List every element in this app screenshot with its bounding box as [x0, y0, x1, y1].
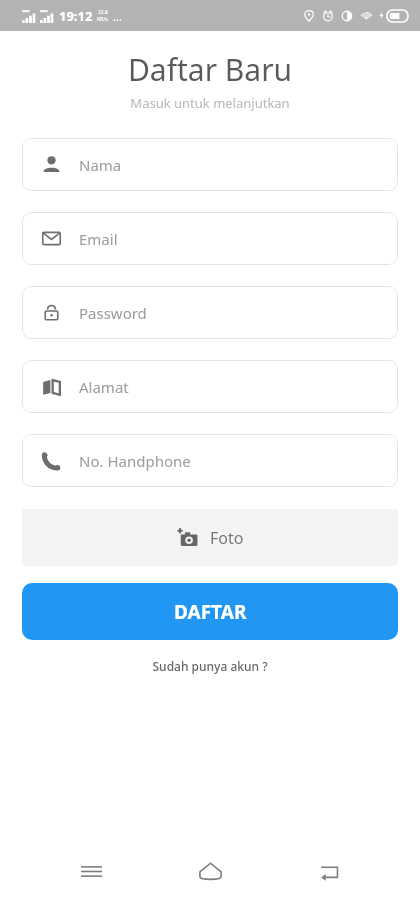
staticText: 22.8	[98, 9, 108, 16]
button[interactable]: No. Handphone	[22, 434, 398, 487]
staticText: KB/s	[97, 16, 108, 23]
staticText: Password	[79, 303, 147, 323]
button[interactable]: Foto	[22, 509, 398, 566]
staticText: ...	[113, 9, 122, 24]
staticText: Daftar Baru	[0, 49, 420, 90]
button[interactable]: Back	[301, 843, 357, 899]
staticText: No. Handphone	[79, 451, 191, 471]
button[interactable]: Password	[22, 286, 398, 339]
staticText: 19:12	[59, 7, 93, 25]
button[interactable]: Alamat	[22, 360, 398, 413]
staticText: Email	[79, 229, 118, 249]
staticText: DAFTAR	[174, 599, 247, 625]
button[interactable]: Nama	[22, 138, 398, 191]
staticText: Nama	[79, 155, 122, 175]
button[interactable]: Home	[182, 843, 238, 899]
staticText: Masuk untuk melanjutkan	[0, 94, 420, 112]
staticText: Foto	[210, 527, 244, 549]
button[interactable]: Recents	[63, 843, 119, 899]
button[interactable]: Email	[22, 212, 398, 265]
staticText: Alamat	[79, 377, 129, 397]
button[interactable]: DAFTAR	[22, 583, 398, 640]
button[interactable]: Sudah punya akun ?	[0, 656, 420, 676]
